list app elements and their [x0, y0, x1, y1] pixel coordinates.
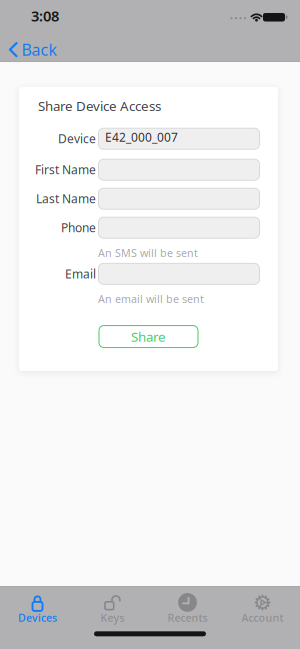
staticText: Email — [65, 266, 96, 282]
staticText: Phone — [61, 220, 96, 236]
staticText: Account — [241, 610, 283, 625]
staticText: Recents — [167, 610, 207, 625]
button[interactable]: Share — [98, 325, 198, 348]
textField[interactable]: E42_000_007 — [105, 129, 260, 145]
staticText: Share Device Access — [38, 97, 161, 115]
staticText: Share — [131, 328, 166, 345]
button[interactable]: Account — [225, 592, 300, 627]
button[interactable]: Devices — [0, 592, 75, 627]
button[interactable]: Keys — [75, 592, 150, 627]
staticText: E42_000_007 — [105, 129, 178, 145]
staticText: Device — [58, 131, 96, 147]
button[interactable]: Recents — [150, 592, 225, 627]
staticText: Keys — [100, 610, 124, 625]
button[interactable]: Back — [10, 39, 57, 60]
staticText: An email will be sent — [98, 292, 204, 306]
staticText: Back — [21, 39, 57, 60]
staticText: Last Name — [36, 191, 96, 207]
staticText: First Name — [35, 162, 96, 178]
staticText: 3:08 — [31, 6, 59, 25]
staticText: Devices — [18, 610, 57, 625]
staticText: An SMS will be sent — [98, 246, 198, 260]
